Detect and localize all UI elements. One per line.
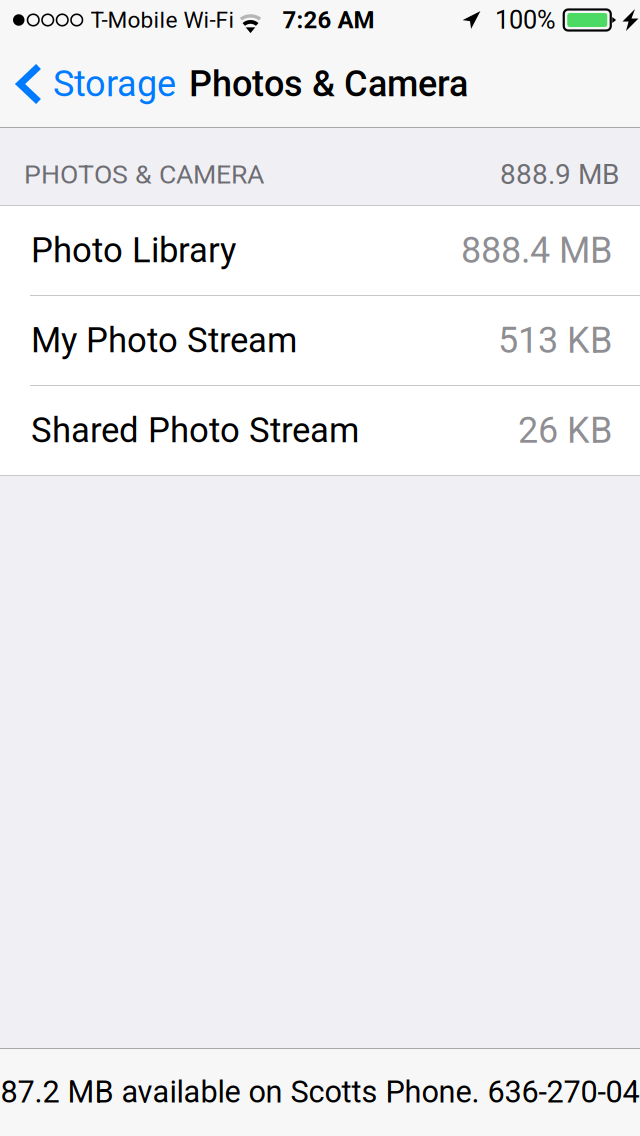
staticText: PHOTOS & CAMERA xyxy=(24,159,264,190)
staticText: 100% xyxy=(495,5,556,35)
staticText: Photo Library xyxy=(31,230,236,271)
staticText: 513 KB xyxy=(498,319,612,362)
staticText: 7:26 AM xyxy=(282,6,374,34)
staticText: Shared Photo Stream xyxy=(31,410,359,451)
staticText: Storage xyxy=(53,63,176,105)
button[interactable]: Photo Library xyxy=(0,206,640,295)
staticText: T-Mobile Wi-Fi xyxy=(90,7,234,33)
button[interactable]: Shared Photo Stream xyxy=(0,386,640,475)
staticText: 26 KB xyxy=(518,409,612,452)
button[interactable]: My Photo Stream xyxy=(0,296,640,385)
staticText: 888.9 MB xyxy=(500,158,619,191)
staticText: My Photo Stream xyxy=(31,320,297,361)
staticText: 888.4 MB xyxy=(461,229,612,272)
button[interactable]: Storage xyxy=(0,40,186,128)
staticText: Photos & Camera xyxy=(189,63,468,105)
staticText: 1087.2 MB available on Scotts Phone. 636… xyxy=(0,1074,640,1110)
